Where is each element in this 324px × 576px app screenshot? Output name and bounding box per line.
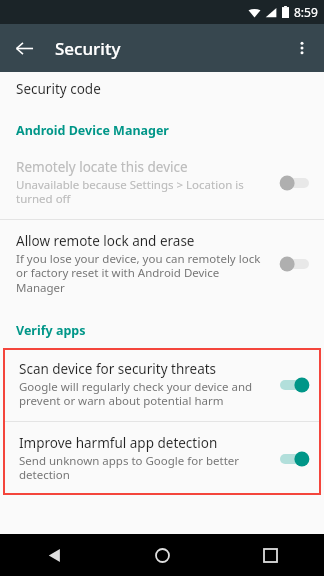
staticText: If you lose your device, you can remotel… bbox=[16, 251, 270, 296]
button[interactable] bbox=[271, 373, 315, 397]
staticText: Security bbox=[55, 37, 121, 60]
staticText: Android Device Manager bbox=[16, 122, 324, 139]
button[interactable]: Improve harmful app detection bbox=[3, 422, 321, 495]
button[interactable]: Back bbox=[4, 28, 44, 68]
button[interactable] bbox=[274, 252, 318, 276]
staticText: Google will regularly check your device … bbox=[19, 379, 267, 409]
button[interactable]: Home bbox=[108, 534, 216, 576]
staticText: Unavailable because Settings > Location … bbox=[16, 177, 270, 207]
button[interactable]: Security code bbox=[0, 72, 324, 108]
button[interactable]: Scan device for security threats bbox=[3, 348, 321, 421]
staticText: Allow remote lock and erase bbox=[16, 232, 195, 250]
staticText: Send unknown apps to Google for better d… bbox=[19, 453, 267, 483]
button[interactable]: Remotely locate this device bbox=[0, 146, 324, 219]
button[interactable]: More options bbox=[282, 28, 322, 68]
staticText: 8:59 bbox=[294, 4, 318, 20]
button[interactable]: Back bbox=[0, 534, 108, 576]
button[interactable] bbox=[274, 171, 318, 195]
staticText: Verify apps bbox=[16, 322, 324, 339]
button[interactable] bbox=[271, 447, 315, 471]
staticText: Scan device for security threats bbox=[19, 360, 217, 378]
button[interactable]: Recent apps bbox=[216, 534, 324, 576]
button[interactable]: Allow remote lock and erase bbox=[0, 220, 324, 308]
staticText: Improve harmful app detection bbox=[19, 434, 218, 452]
staticText: Remotely locate this device bbox=[16, 158, 188, 176]
